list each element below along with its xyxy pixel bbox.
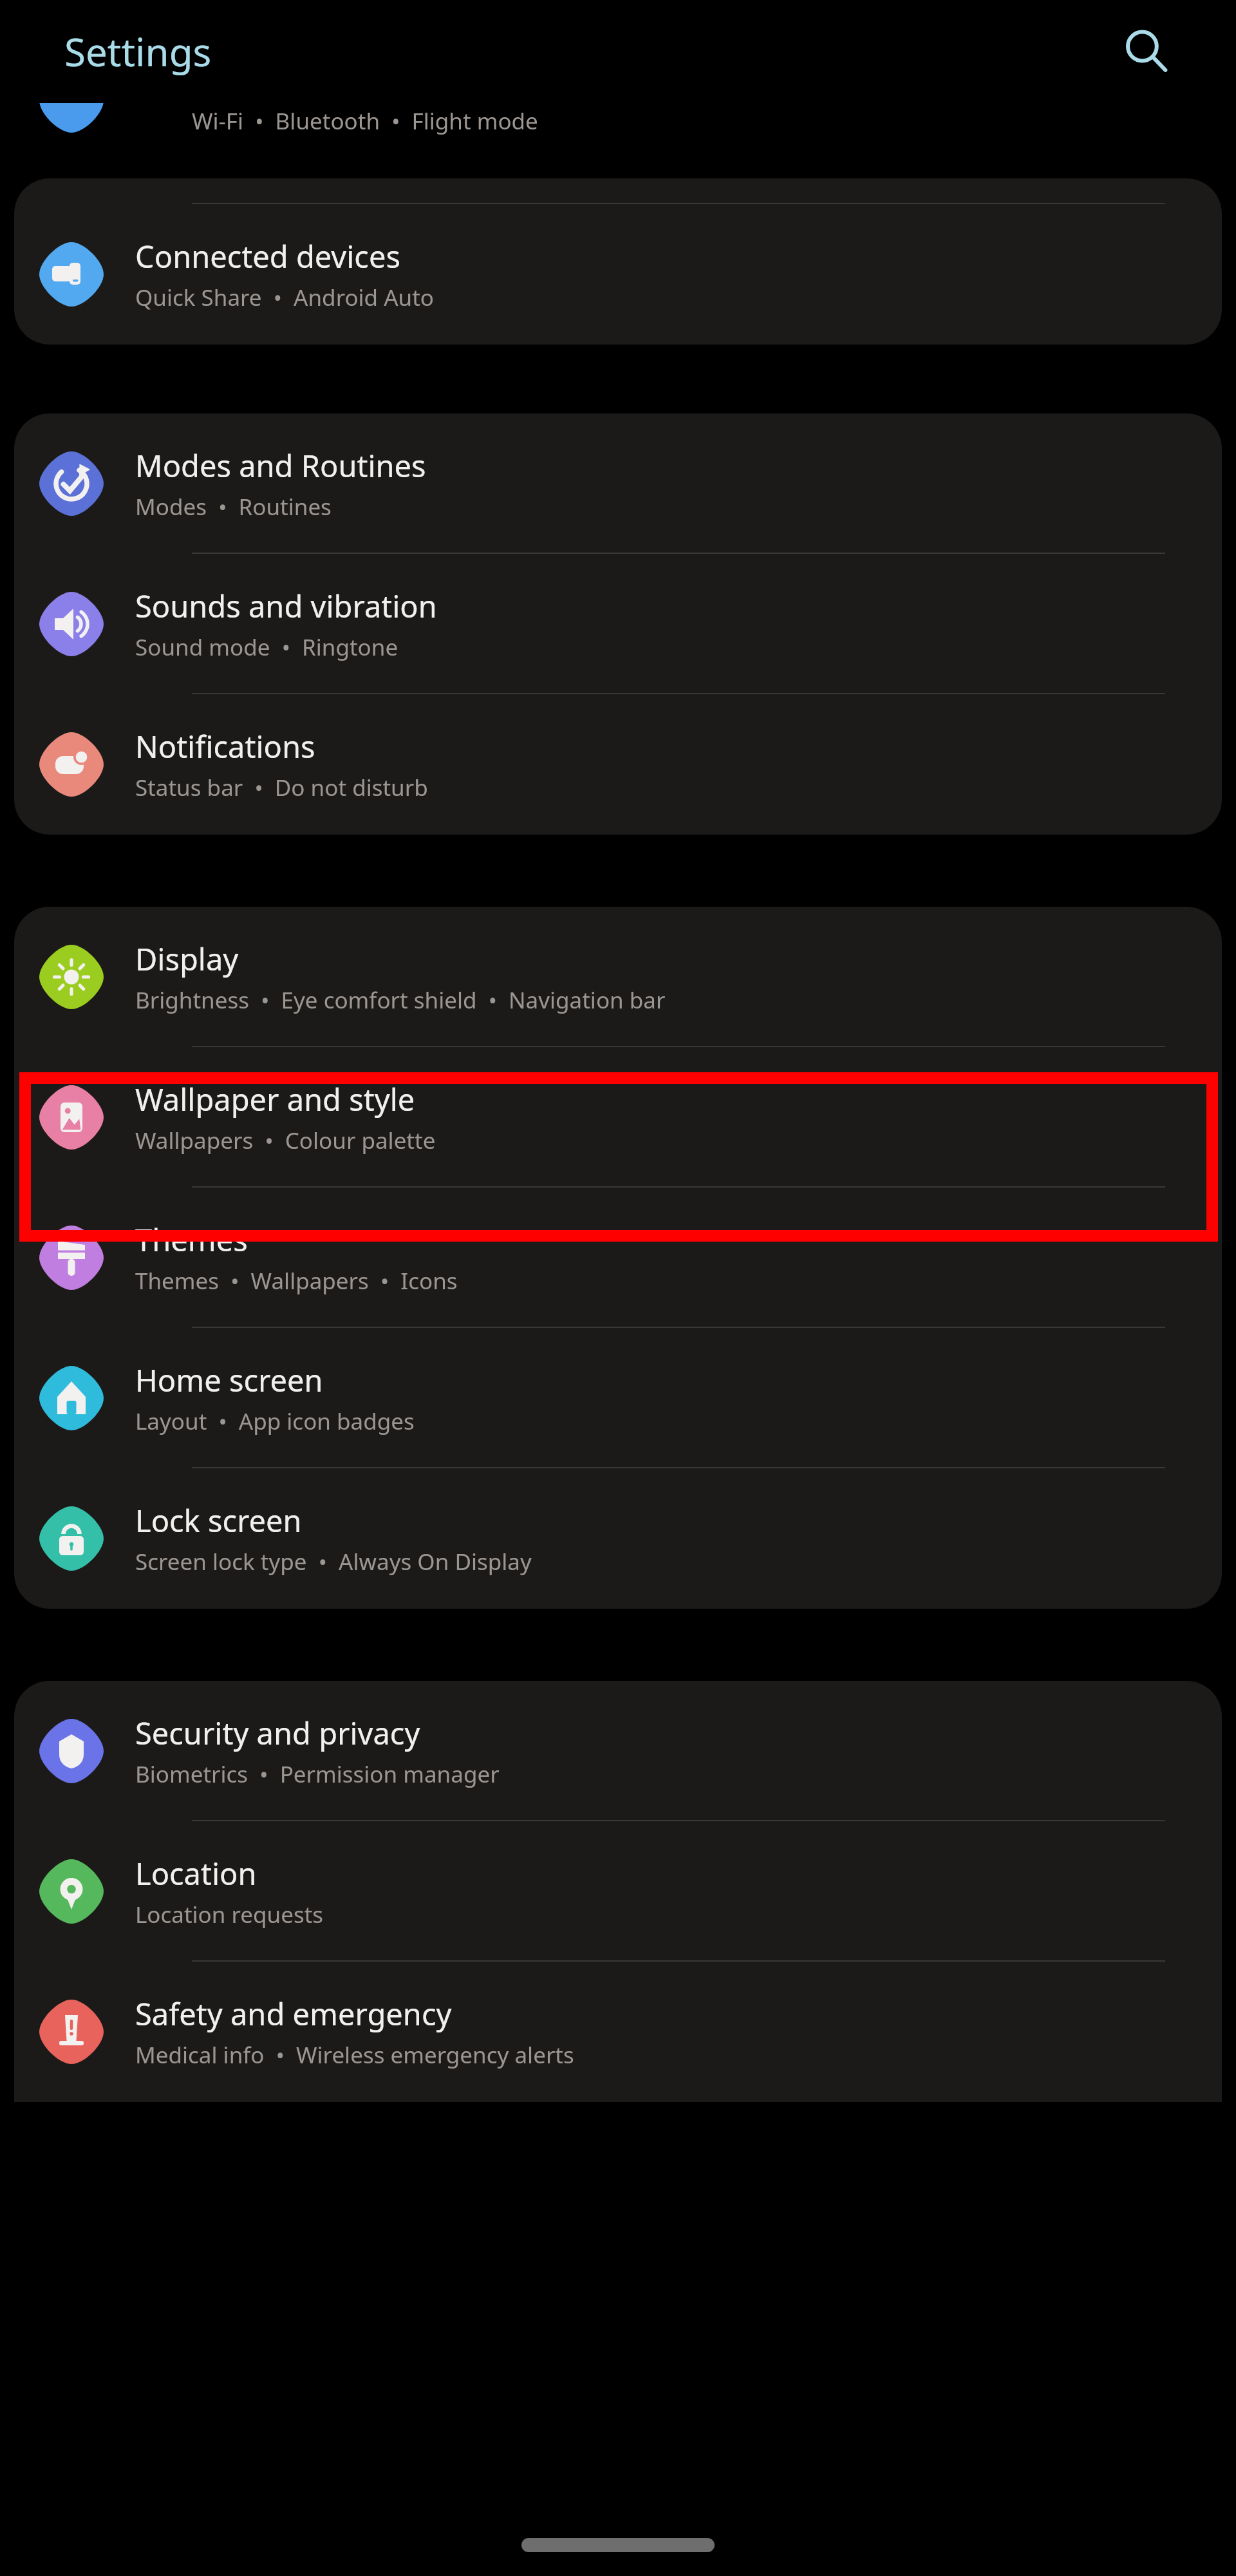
button[interactable]: Connected devices [14,204,1222,345]
staticText: Wallpaper and style [135,1079,415,1120]
button[interactable]: Lock screen [14,1468,1222,1609]
button[interactable]: Location [14,1821,1222,1962]
staticText: Location [135,1853,257,1894]
staticText: Status bar • Do not disturb [135,772,428,803]
staticText: Location requests [135,1899,324,1930]
staticText: Sound mode • Ringtone [135,632,398,663]
button[interactable]: Search [1107,13,1184,90]
staticText: Lock screen [135,1500,302,1541]
staticText: Home screen [135,1359,323,1401]
staticText: Safety and emergency [135,1993,452,2034]
staticText: Themes • Wallpapers • Icons [135,1265,458,1296]
button[interactable]: Wallpaper and style [14,1047,1222,1188]
staticText: Wi-Fi • Bluetooth • Flight mode [192,106,538,137]
button[interactable]: Sounds and vibration [14,554,1222,694]
staticText: Sounds and vibration [135,585,437,627]
button[interactable]: Notifications [14,694,1222,835]
button[interactable]: Display [14,907,1222,1047]
staticText: Display [135,938,239,980]
staticText: Medical info • Wireless emergency alerts [135,2040,574,2070]
staticText: Settings [64,25,212,78]
staticText: Security and privacy [135,1712,420,1754]
button[interactable]: Security and privacy [14,1681,1222,1821]
staticText: Brightness • Eye comfort shield • Naviga… [135,985,666,1016]
button[interactable]: Home screen [14,1328,1222,1468]
button[interactable]: Modes and Routines [14,413,1222,554]
button[interactable]: Themes [14,1188,1222,1328]
staticText: Quick Share • Android Auto [135,282,435,313]
staticText: Biometrics • Permission manager [135,1759,500,1790]
button[interactable]: Safety and emergency [14,1962,1222,2102]
staticText: Wallpapers • Colour palette [135,1125,436,1156]
staticText: Screen lock type • Always On Display [135,1546,532,1577]
staticText: Notifications [135,726,315,767]
staticText: Connected devices [135,236,400,277]
staticText: Themes [135,1219,248,1260]
staticText: Layout • App icon badges [135,1406,415,1437]
staticText: Modes • Routines [135,491,332,522]
staticText: Modes and Routines [135,445,426,486]
